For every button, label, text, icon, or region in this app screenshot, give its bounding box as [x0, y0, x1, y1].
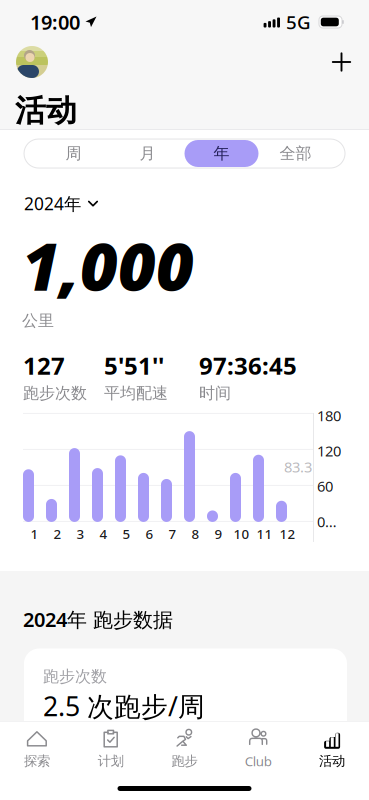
staticText: 127: [23, 349, 65, 381]
staticText: Club: [245, 752, 272, 770]
button[interactable]: 计划: [74, 721, 148, 769]
staticText: 19:00: [30, 9, 80, 35]
staticText: 1,000: [22, 222, 194, 309]
staticText: 12: [279, 525, 295, 543]
staticText: 9: [214, 525, 222, 543]
staticText: 跑步次数: [43, 667, 107, 686]
staticText: 8: [191, 525, 199, 543]
staticText: 2: [53, 525, 61, 543]
staticText: 120: [317, 441, 341, 460]
staticText: 4: [99, 525, 107, 543]
staticText: 2024年: [24, 192, 81, 215]
button[interactable]: Add: [332, 52, 351, 71]
staticText: 2.5 次跑步/周: [43, 688, 205, 724]
staticText: 月: [139, 144, 155, 163]
button[interactable]: 周: [36, 140, 110, 167]
staticText: 跑步次数: [23, 383, 87, 403]
button[interactable]: 活动: [295, 721, 369, 769]
staticText: 10: [233, 525, 249, 543]
button[interactable]: 全部: [258, 140, 332, 167]
button[interactable]: Profile: [16, 46, 48, 78]
staticText: 6: [145, 525, 153, 543]
staticText: 时间: [199, 383, 231, 403]
staticText: 周: [65, 144, 81, 163]
staticText: 11: [256, 525, 272, 543]
button[interactable]: 年: [184, 140, 258, 167]
staticText: 0…: [317, 512, 337, 531]
button[interactable]: Club: [221, 720, 295, 770]
staticText: 年: [213, 144, 229, 163]
staticText: 1: [30, 525, 38, 543]
button[interactable]: 2024年: [24, 192, 98, 215]
staticText: 跑步: [171, 753, 197, 769]
button[interactable]: 探索: [0, 721, 74, 769]
staticText: 3: [76, 525, 84, 543]
staticText: 7: [168, 525, 176, 543]
button[interactable]: 跑步: [148, 721, 221, 769]
staticText: 活动: [15, 92, 77, 130]
button[interactable]: 月: [110, 140, 184, 167]
staticText: 97:36:45: [199, 349, 297, 381]
staticText: 83.3: [284, 457, 312, 476]
staticText: 探索: [24, 753, 50, 769]
staticText: 计划: [98, 753, 124, 769]
staticText: 2024年 跑步数据: [23, 606, 173, 633]
staticText: 5: [122, 525, 130, 543]
staticText: 活动: [319, 753, 345, 769]
staticText: 60: [317, 476, 333, 496]
staticText: 5'51'': [104, 349, 164, 381]
staticText: 公里: [22, 311, 54, 330]
staticText: 全部: [279, 144, 311, 163]
staticText: 平均配速: [104, 383, 168, 403]
staticText: 180: [317, 406, 341, 425]
staticText: 5G: [286, 10, 311, 34]
